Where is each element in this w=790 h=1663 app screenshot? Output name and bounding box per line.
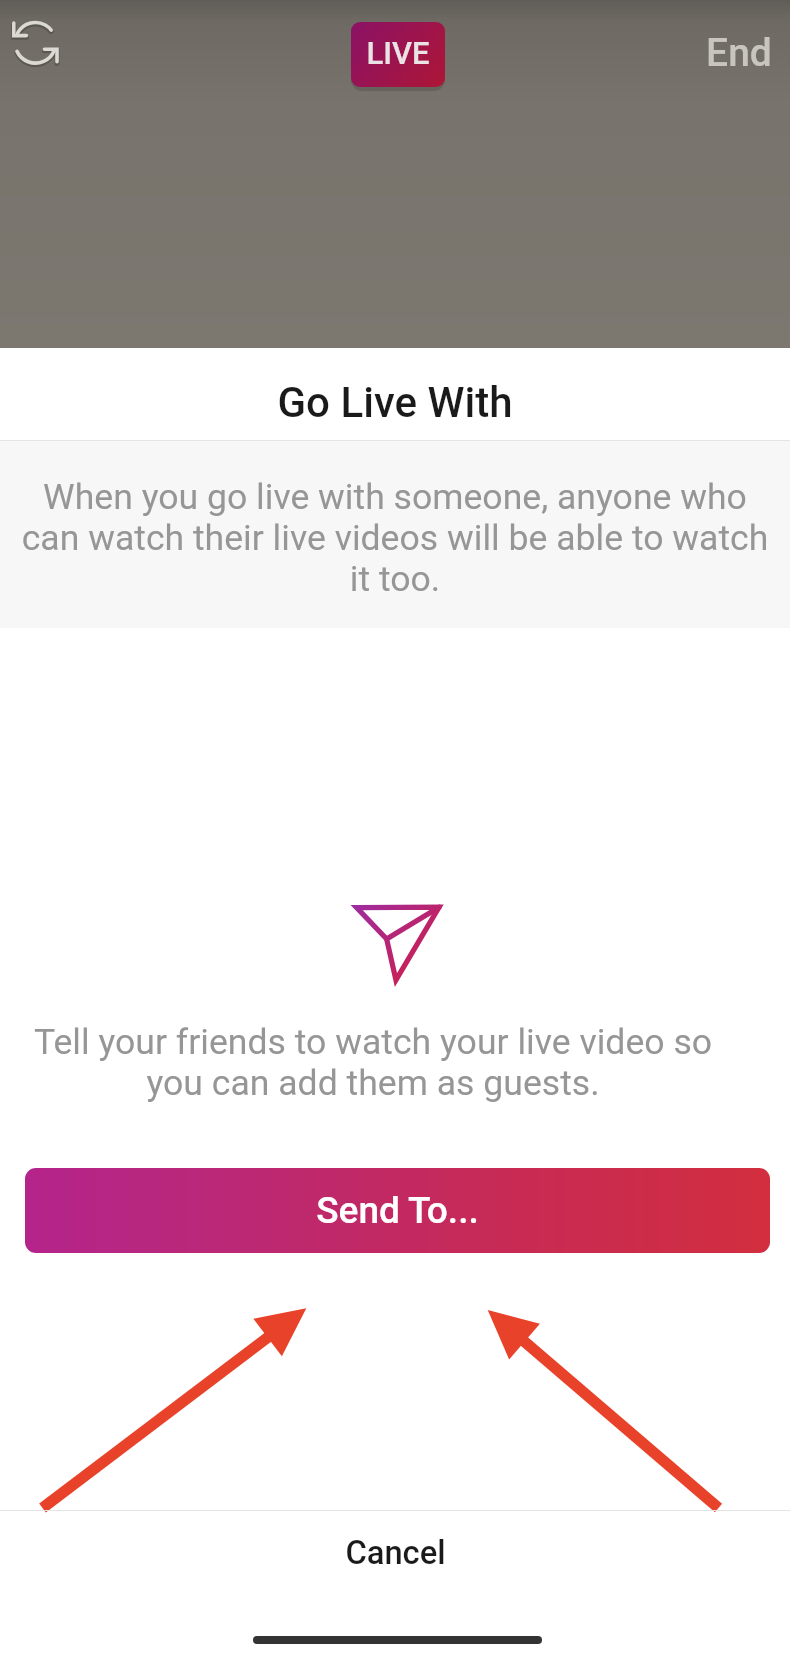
button[interactable]: LIVE bbox=[351, 22, 445, 87]
button[interactable]: Flip camera bbox=[0, 0, 70, 72]
staticText: Go Live With bbox=[277, 378, 513, 427]
staticText: LIVE bbox=[366, 35, 430, 71]
button[interactable]: End bbox=[706, 30, 772, 76]
staticText: Cancel bbox=[345, 1534, 446, 1572]
staticText: When you go live with someone, anyone wh… bbox=[11, 476, 779, 600]
button[interactable]: Cancel bbox=[0, 1511, 790, 1601]
staticText: End bbox=[706, 30, 772, 76]
staticText: Send To... bbox=[316, 1189, 479, 1232]
staticText: Tell your friends to watch your live vid… bbox=[14, 1021, 732, 1104]
button[interactable]: Send To... bbox=[25, 1168, 770, 1253]
